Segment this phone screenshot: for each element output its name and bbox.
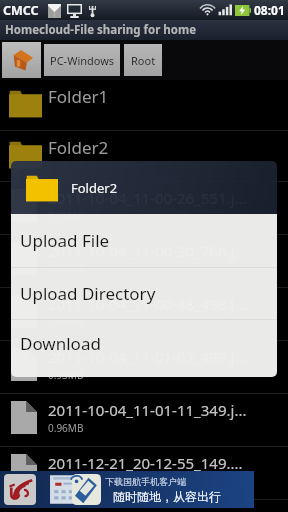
staticText: 0.94MB [48,315,84,329]
staticText: 2011-12-21_20-12-55_149.... [48,453,243,473]
staticText [48,474,51,488]
staticText: 0.91MB [48,209,84,223]
button[interactable]: 2011-10-04_11-00-26_551.j... [0,182,288,235]
staticText: 2011-10-04_11-00-48_498.j... [48,294,247,314]
staticText: Homecloud-File sharing for home [5,22,197,38]
button[interactable]: Folder2 [0,131,288,182]
staticText: 0.95MB [48,262,84,276]
button[interactable]: Download [11,320,277,377]
button[interactable]: Home [2,42,41,78]
staticText: CMCC [3,2,39,19]
button[interactable]: PC-Windows [44,44,120,76]
button[interactable]: 2011-10-04_11-00-30_766.j... [0,235,288,288]
staticText: Upload File [20,229,110,252]
button[interactable]: Root [124,44,162,76]
staticText: 随时随地，从容出行 [113,489,221,504]
button[interactable]: Upload Directory [11,268,277,319]
button[interactable]: Upload File [11,214,277,267]
staticText: 2011-10-04_11-01-07_499.j... [48,347,247,367]
button[interactable]: Folder1 [0,80,288,131]
staticText: 2011-10-04_11-00-30_766.j... [48,241,247,261]
staticText: 下载国航手机客户端 [105,476,186,487]
staticText: 0.96MB [48,421,84,435]
button[interactable]: 下载国航手机客户端 [0,471,254,508]
staticText: Root [131,53,156,68]
button[interactable]: 2011-10-04_11-01-11_349.j... [0,394,288,447]
staticText: 0.93MB [48,368,84,382]
staticText: PC-Windows [50,53,115,68]
staticText: 08:01 [254,2,285,18]
staticText: Folder2 [71,179,118,197]
button[interactable]: 2011-10-04_11-01-07_499.j... [0,341,288,394]
staticText: Upload Directory [20,282,156,305]
staticText: Download [20,332,101,355]
staticText: 2011-10-04_11-00-26_551.j... [48,188,247,208]
button[interactable]: 2011-12-21_20-12-55_149.... [0,447,288,500]
button[interactable]: 2011-10-04_11-00-48_498.j... [0,288,288,341]
staticText: 2011-10-04_11-01-11_349.j... [48,400,247,420]
staticText: Folder1 [48,85,109,108]
staticText: Folder2 [48,136,109,159]
